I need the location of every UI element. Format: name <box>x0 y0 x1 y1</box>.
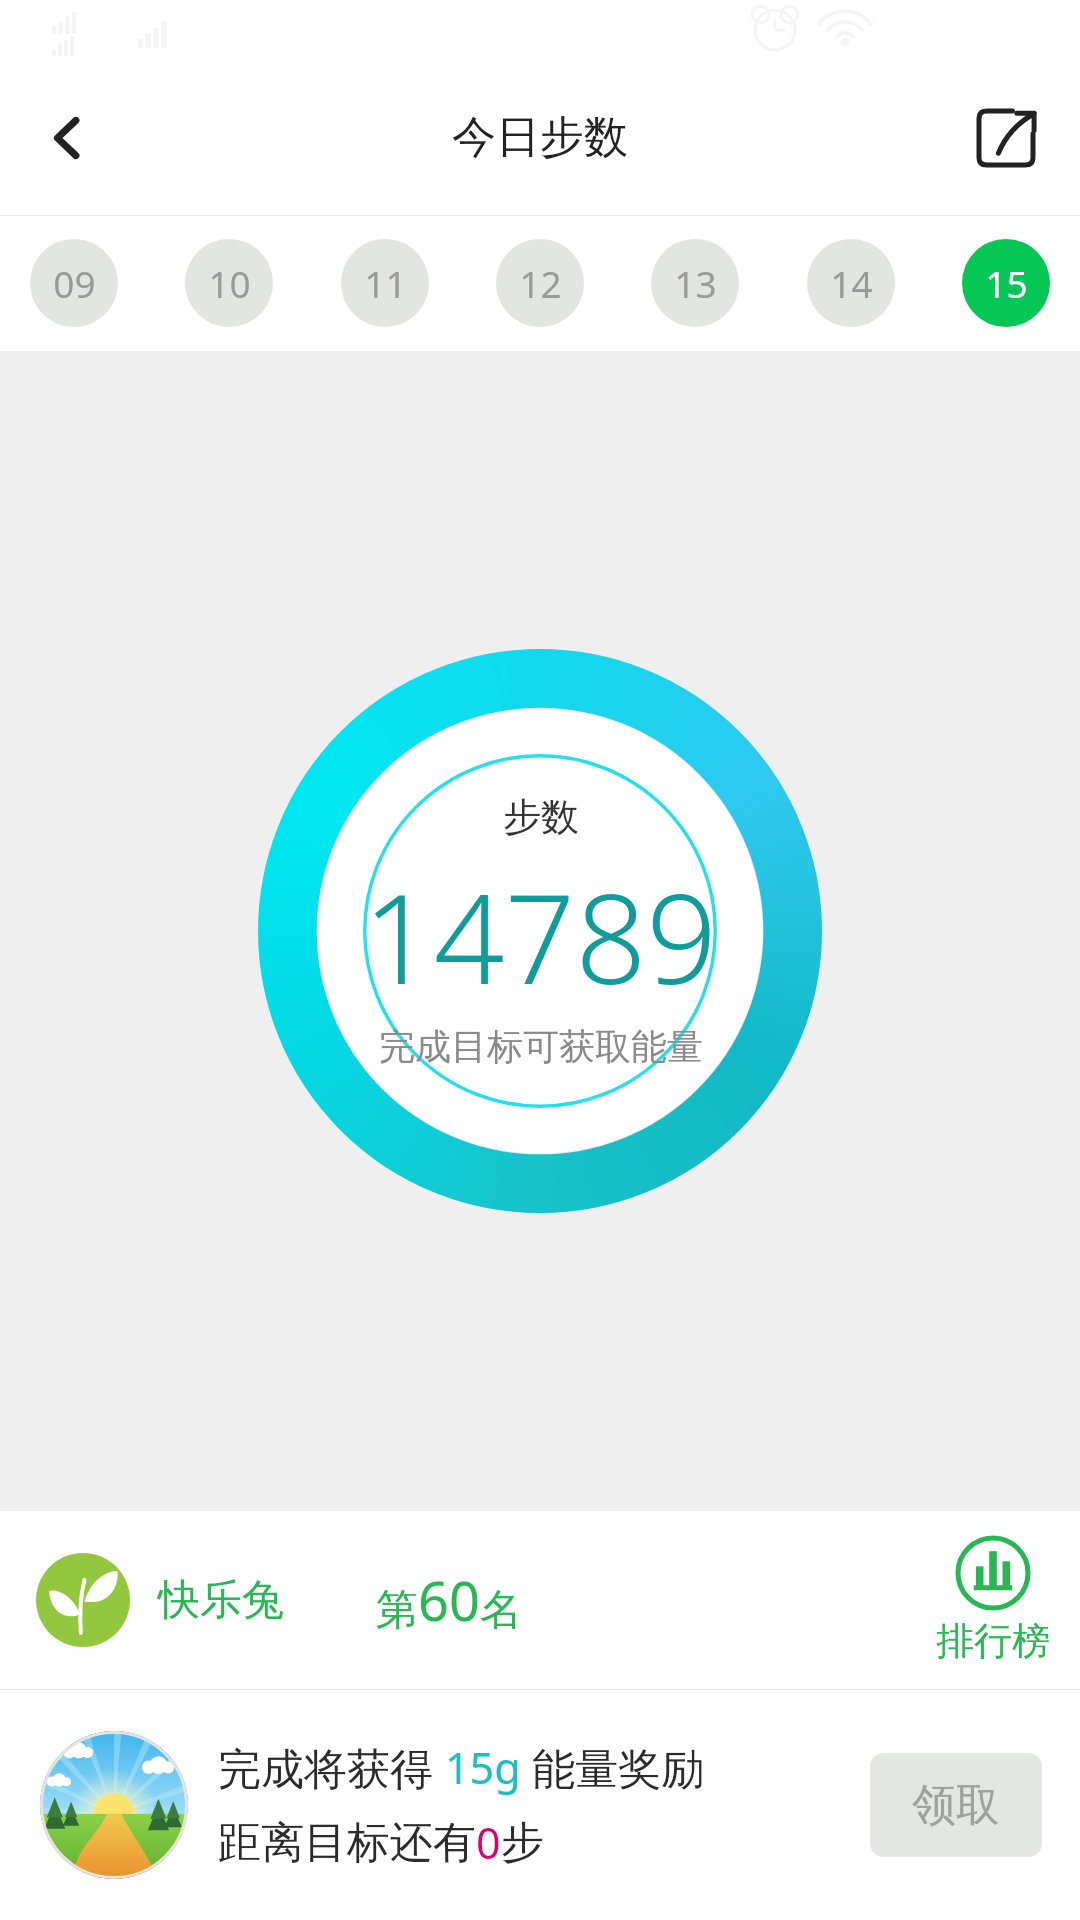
button[interactable]: 13 <box>651 239 739 327</box>
staticText: 完成将获得 <box>218 1738 445 1797</box>
staticText: 0 <box>476 1813 501 1872</box>
button[interactable]: Share <box>958 90 1054 186</box>
button[interactable]: 快乐兔 <box>0 1511 1080 1689</box>
staticText: 14789 <box>363 851 718 1020</box>
staticText: 步数 <box>503 793 579 841</box>
button[interactable]: 排行榜 <box>936 1535 1050 1665</box>
staticText: 12 <box>519 258 562 308</box>
staticText: 15 <box>985 258 1028 308</box>
button[interactable]: 15 <box>962 239 1050 327</box>
staticText: 第 <box>376 1584 418 1637</box>
button[interactable]: 10 <box>185 239 273 327</box>
staticText: 距离目标还有 <box>218 1816 476 1870</box>
button[interactable]: 14 <box>807 239 895 327</box>
staticText: 快乐兔 <box>158 1574 284 1627</box>
button[interactable]: 领取 <box>870 1753 1042 1857</box>
staticText: 09 <box>53 258 96 308</box>
button[interactable]: 09 <box>30 239 118 327</box>
staticText: 名 <box>480 1584 522 1637</box>
staticText: 能量奖励 <box>521 1738 705 1797</box>
staticText: 排行榜 <box>936 1617 1050 1665</box>
staticText: 10 <box>208 258 251 308</box>
staticText: 11 <box>364 258 407 308</box>
staticText: 完成目标可获取能量 <box>379 1024 703 1069</box>
button[interactable]: 12 <box>496 239 584 327</box>
staticText: 13 <box>674 258 717 308</box>
button[interactable]: 11 <box>341 239 429 327</box>
staticText: 领取 <box>912 1778 1000 1833</box>
staticText: 15g <box>445 1738 521 1797</box>
staticText: 今日步数 <box>452 110 628 165</box>
staticText: 步 <box>501 1816 544 1870</box>
button[interactable]: Back <box>20 90 116 186</box>
staticText: 14 <box>830 258 873 308</box>
staticText: 60 <box>418 1563 480 1637</box>
